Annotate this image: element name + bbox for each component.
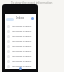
staticText: Message subject line — [12, 29, 35, 34]
staticText: Message subject line — [12, 24, 35, 29]
staticText: Message subject line — [12, 64, 35, 69]
button[interactable]: Message subject line — [5, 59, 36, 64]
staticText: To view the exact information — [11, 1, 53, 5]
button[interactable]: Message subject line — [5, 64, 36, 69]
button[interactable]: Message subject line — [5, 54, 36, 59]
staticText: Message subject line — [12, 54, 35, 59]
staticText: Message subject line — [12, 39, 35, 44]
button[interactable]: Message subject line — [5, 39, 36, 44]
button[interactable]: Message subject line — [5, 44, 36, 49]
staticText: Inbox — [16, 16, 25, 20]
staticText: Message subject line — [12, 34, 35, 39]
button[interactable]: Account — [31, 17, 34, 20]
staticText: Message subject line — [12, 59, 35, 64]
staticText: Message subject line — [12, 44, 35, 49]
staticText: Message subject line — [12, 49, 35, 54]
button[interactable]: Message subject line — [5, 49, 36, 54]
button[interactable]: Message subject line — [5, 29, 36, 34]
button[interactable]: Message subject line — [5, 34, 36, 39]
button[interactable] — [6, 18, 14, 21]
button[interactable]: Compose — [19, 67, 22, 70]
button[interactable]: Message subject line — [5, 24, 36, 29]
